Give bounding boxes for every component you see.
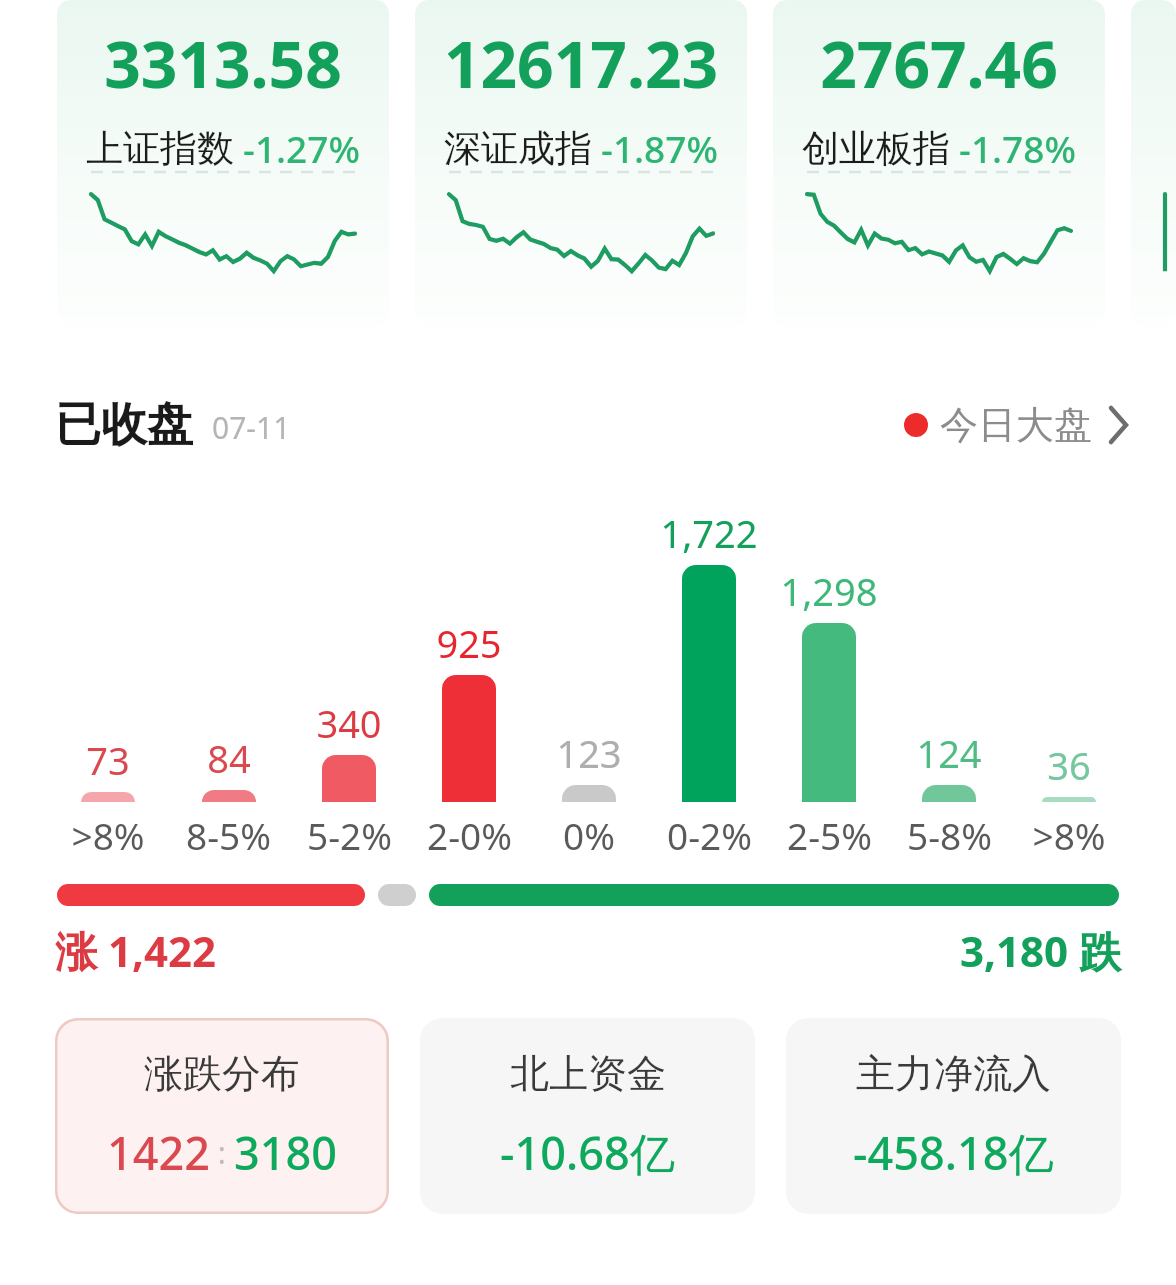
staticText: 3,180 跌 <box>960 922 1121 979</box>
staticText: -1.27% <box>243 123 360 173</box>
staticText: 2767.46 <box>773 20 1105 107</box>
staticText: 8-5% <box>186 810 271 860</box>
button[interactable]: 北上资金 <box>420 1018 755 1214</box>
staticText: 1,722 <box>660 507 758 559</box>
staticText: 5-8% <box>907 810 992 860</box>
staticText: 已收盘 <box>55 396 193 454</box>
staticText: -1.87% <box>601 123 718 173</box>
staticText: 2-5% <box>787 810 872 860</box>
staticText: 今日大盘 <box>940 401 1092 449</box>
staticText: 0% <box>563 810 615 860</box>
staticText: 主力净流入 <box>856 1049 1051 1098</box>
button[interactable]: 涨跌分布 <box>55 1018 389 1214</box>
staticText: 124 <box>916 727 982 779</box>
staticText: 07-11 <box>212 407 291 448</box>
button[interactable]: 3313.58 <box>57 0 389 326</box>
staticText: >8% <box>71 810 145 860</box>
staticText: 0-2% <box>667 810 752 860</box>
staticText: 340 <box>316 697 382 749</box>
staticText: 1,298 <box>780 565 878 617</box>
staticText: -10.68亿 <box>500 1122 675 1183</box>
staticText: 创业板指 <box>802 125 950 172</box>
button[interactable] <box>1131 0 1176 326</box>
staticText: 深证成指 <box>444 125 592 172</box>
staticText: 12617.23 <box>415 20 747 107</box>
button[interactable]: 主力净流入 <box>786 1018 1121 1214</box>
staticText: 1422 <box>107 1122 210 1183</box>
staticText: -1.78% <box>959 123 1076 173</box>
staticText: 上证指数 <box>86 125 234 172</box>
button[interactable]: 12617.23 <box>415 0 747 326</box>
staticText: -458.18亿 <box>853 1122 1054 1183</box>
staticText: 涨 1,422 <box>55 922 216 979</box>
staticText: 3180 <box>234 1122 337 1183</box>
staticText: 73 <box>86 734 130 786</box>
staticText: 36 <box>1047 739 1091 791</box>
button[interactable]: 2767.46 <box>773 0 1105 326</box>
staticText: 涨跌分布 <box>144 1049 300 1098</box>
staticText: >8% <box>1032 810 1106 860</box>
button[interactable]: 今日大盘 <box>892 393 1176 457</box>
staticText: : <box>210 1132 234 1173</box>
staticText: 2-0% <box>427 810 512 860</box>
staticText: 北上资金 <box>510 1049 666 1098</box>
staticText: 123 <box>556 727 622 779</box>
staticText: 925 <box>436 617 502 669</box>
staticText: 3313.58 <box>57 20 389 107</box>
staticText: 84 <box>207 732 251 784</box>
staticText: 5-2% <box>307 810 392 860</box>
